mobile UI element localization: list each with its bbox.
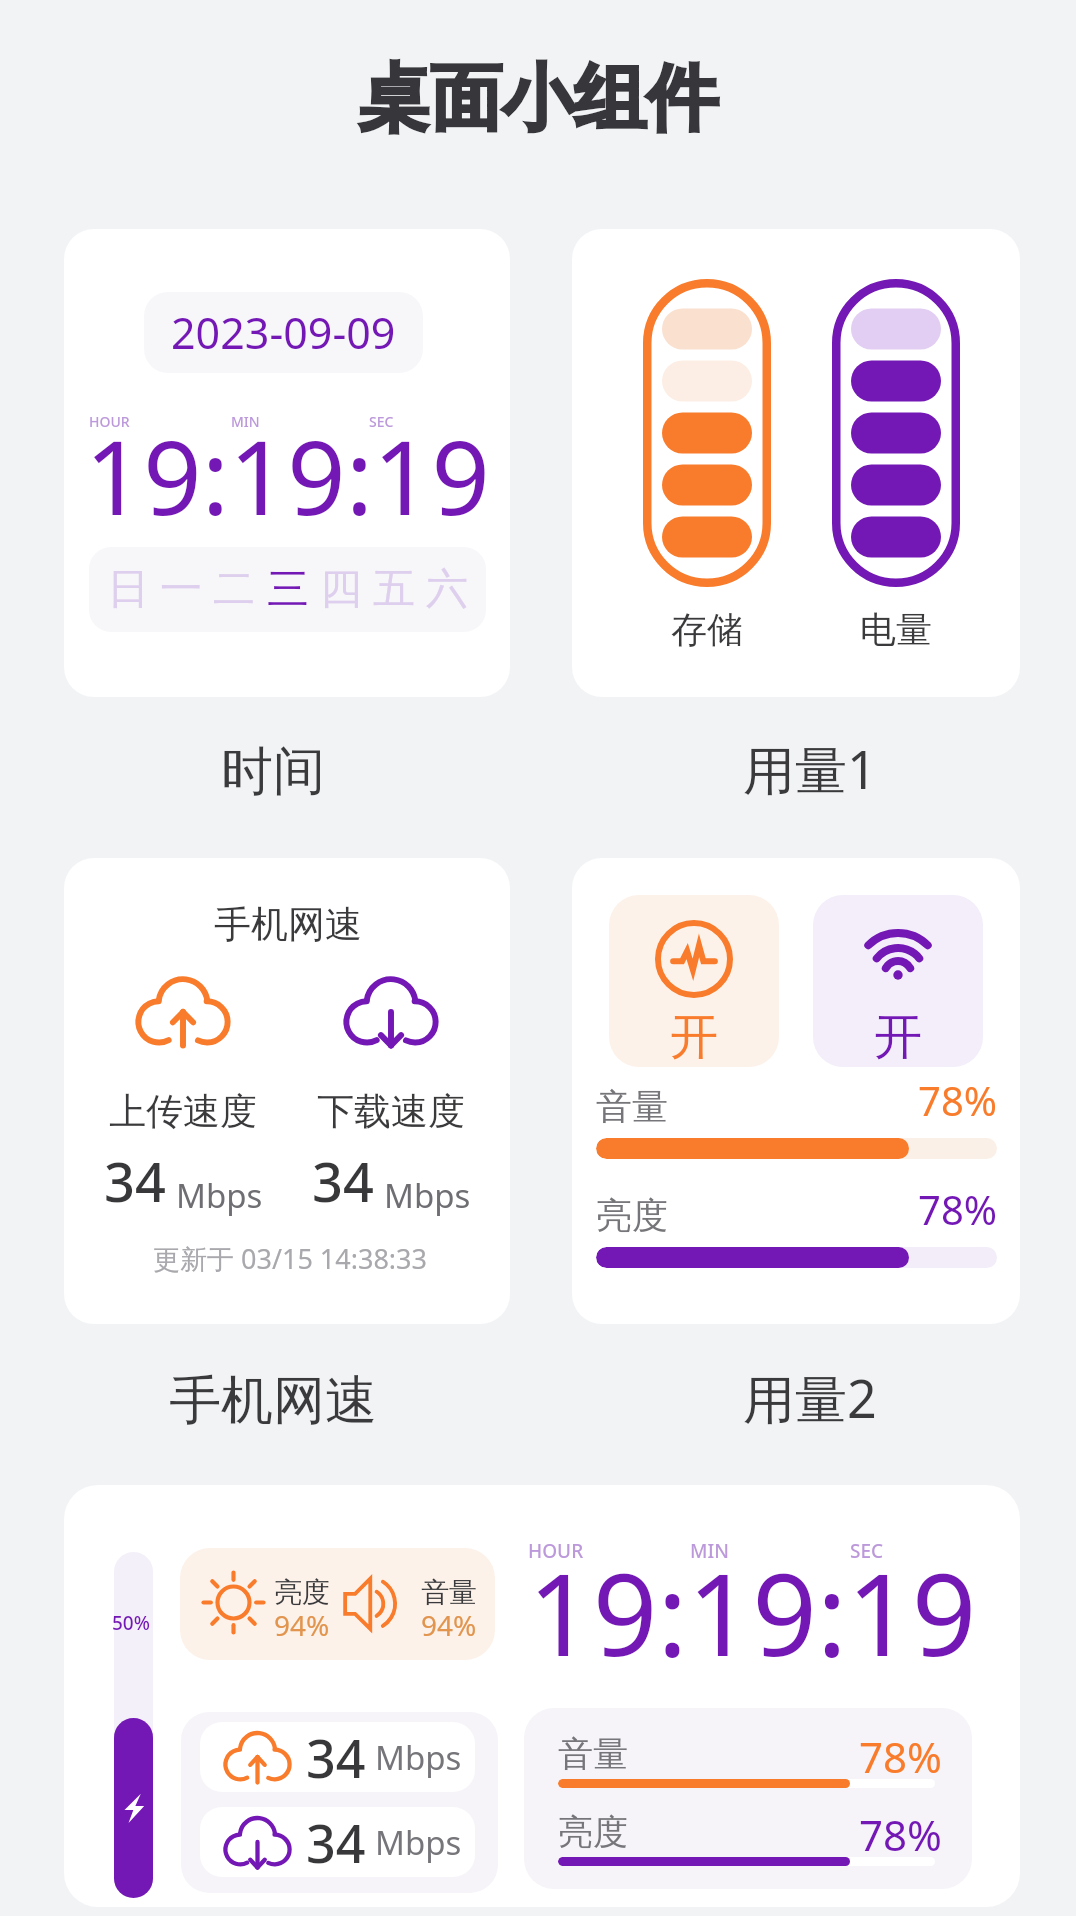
staticText: 开: [670, 1007, 718, 1067]
staticText: 78%: [918, 1182, 997, 1236]
staticText: 94%: [274, 1606, 330, 1644]
staticText: 二: [213, 563, 255, 616]
button[interactable]: WiFi: [813, 895, 983, 1067]
staticText: 手机网速: [214, 901, 362, 948]
staticText: 亮度: [596, 1193, 668, 1238]
staticText: 手机网速: [169, 1368, 377, 1434]
staticText: 亮度: [558, 1810, 628, 1854]
staticText: 34: [312, 1144, 374, 1218]
staticText: 音量: [421, 1575, 477, 1610]
staticText: 音量: [558, 1732, 628, 1776]
staticText: MIN: [231, 412, 260, 431]
staticText: 亮度: [274, 1575, 330, 1610]
staticText: 四: [320, 563, 362, 616]
staticText: 34: [306, 1807, 366, 1877]
staticText: 一: [160, 563, 202, 616]
staticText: 日: [107, 563, 149, 616]
staticText: 三: [267, 563, 309, 616]
staticText: 用量2: [743, 1362, 877, 1433]
staticText: 桌面小组件: [0, 54, 1076, 145]
button[interactable]: 存储: [572, 229, 1020, 697]
staticText: 用量1: [743, 733, 877, 804]
staticText: 19:19:19: [85, 406, 490, 545]
button[interactable]: 2023-09-09: [64, 229, 510, 697]
staticText: HOUR: [528, 1538, 584, 1564]
staticText: 六: [426, 563, 468, 616]
staticText: 34: [104, 1144, 166, 1218]
staticText: MIN: [690, 1538, 729, 1564]
staticText: SEC: [369, 412, 394, 431]
staticText: Mbps: [375, 1735, 462, 1780]
staticText: Mbps: [176, 1173, 263, 1218]
staticText: 存储: [671, 607, 743, 652]
button[interactable]: Mobile data: [572, 858, 1020, 1324]
staticText: Mbps: [384, 1173, 471, 1218]
staticText: HOUR: [89, 412, 130, 431]
staticText: 19:19:19: [528, 1535, 977, 1689]
staticText: 50%: [112, 1610, 150, 1636]
button[interactable]: 手机网速: [64, 858, 510, 1324]
staticText: 电量: [860, 607, 932, 652]
staticText: 94%: [421, 1606, 477, 1644]
staticText: 时间: [221, 739, 325, 805]
staticText: SEC: [850, 1538, 884, 1564]
staticText: 34: [306, 1722, 366, 1792]
staticText: 下载速度: [317, 1088, 465, 1135]
button[interactable]: 50%: [64, 1485, 1020, 1907]
staticText: 更新于 03/15 14:38:33: [153, 1240, 427, 1277]
staticText: 五: [373, 563, 415, 616]
staticText: 78%: [918, 1073, 997, 1127]
button[interactable]: Mobile data: [609, 895, 779, 1067]
staticText: Mbps: [375, 1820, 462, 1865]
staticText: 开: [874, 1007, 922, 1067]
staticText: 78%: [859, 1806, 942, 1863]
staticText: 2023-09-09: [171, 303, 396, 362]
staticText: 音量: [596, 1084, 668, 1129]
staticText: 上传速度: [109, 1088, 257, 1135]
staticText: 78%: [859, 1728, 942, 1785]
